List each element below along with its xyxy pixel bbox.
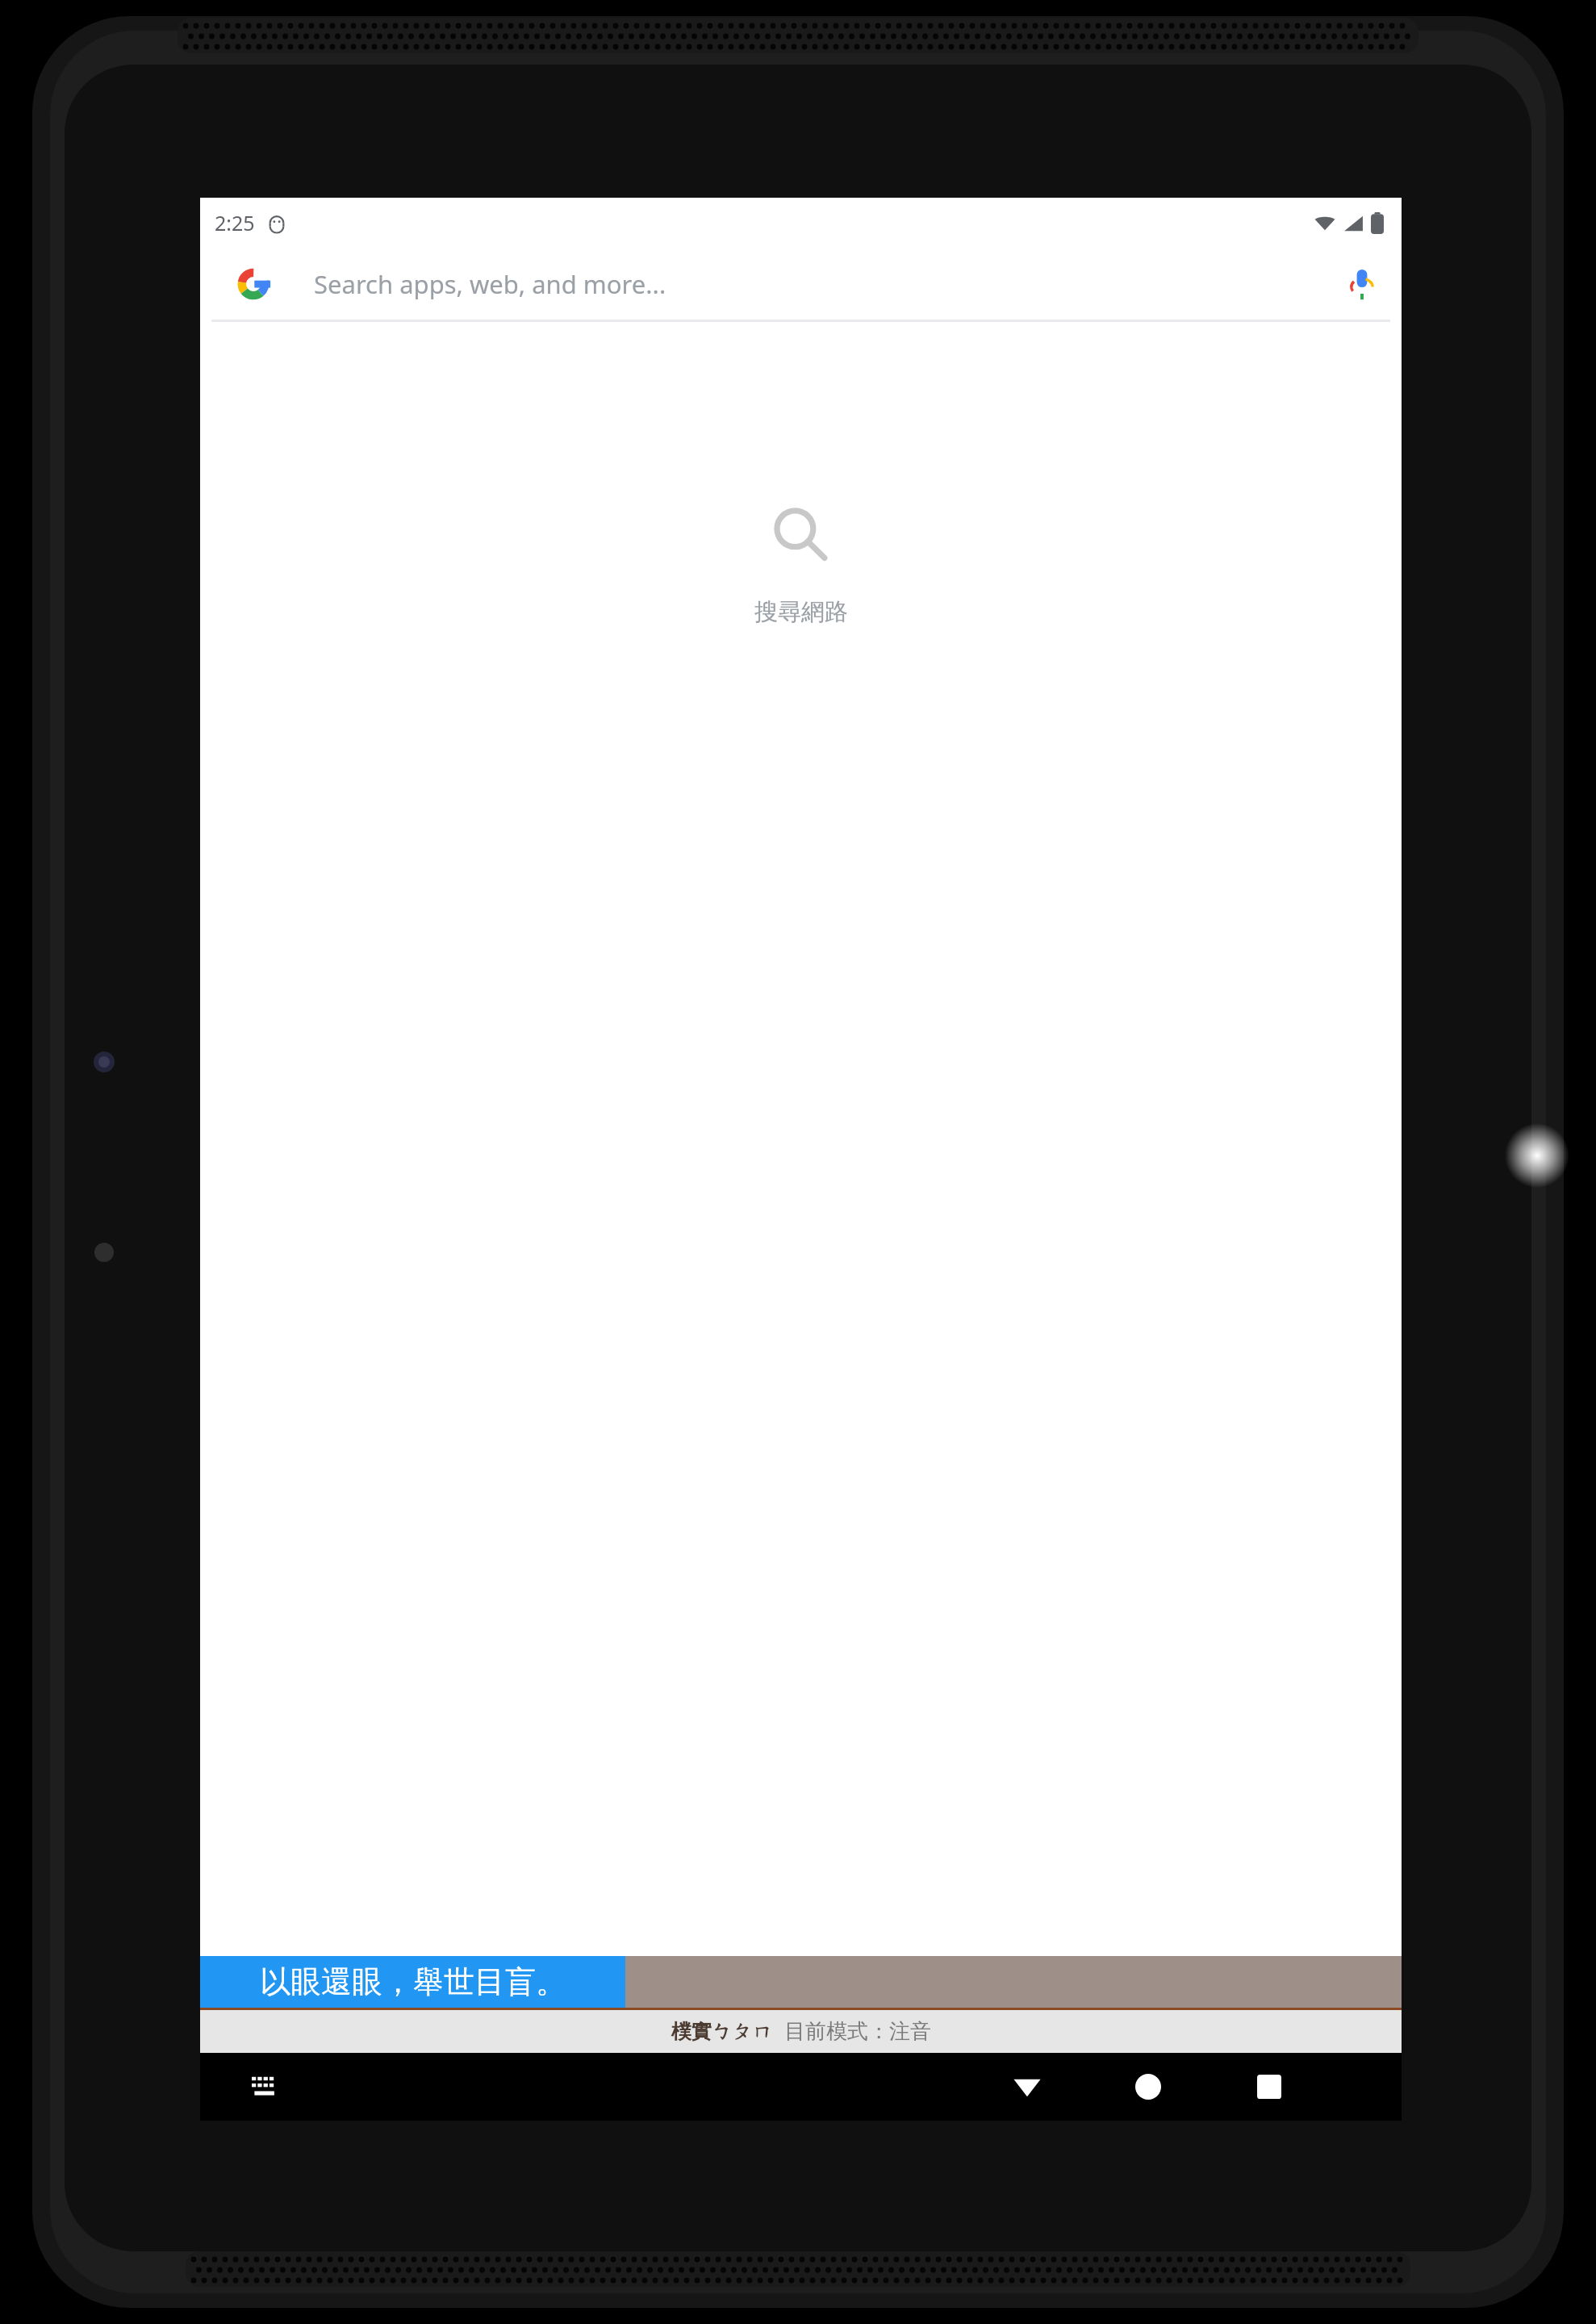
button[interactable]: Back: [988, 2053, 1066, 2121]
staticText: 目前模式：注音: [784, 2018, 931, 2045]
staticText: 以眼還眼，舉世目盲。: [260, 1962, 566, 2001]
button[interactable]: Recent apps: [1230, 2053, 1308, 2121]
staticText: Search apps, web, and more...: [314, 267, 1331, 301]
button[interactable]: Home: [1109, 2053, 1187, 2121]
button[interactable]: [625, 1956, 1402, 2008]
button[interactable]: Search apps, web, and more...: [200, 248, 1402, 320]
staticText: 2:25: [215, 209, 255, 236]
staticText: 樸實ㄅㄆㄇ: [671, 2019, 773, 2044]
button[interactable]: Voice search: [1331, 253, 1393, 316]
staticText: 搜尋網路: [754, 597, 848, 627]
button[interactable]: 以眼還眼，舉世目盲。: [200, 1956, 625, 2008]
button[interactable]: 樸實ㄅㄆㄇ: [200, 2010, 1402, 2053]
button[interactable]: Keyboard: [242, 2063, 289, 2110]
button[interactable]: 搜尋網路: [722, 495, 880, 637]
